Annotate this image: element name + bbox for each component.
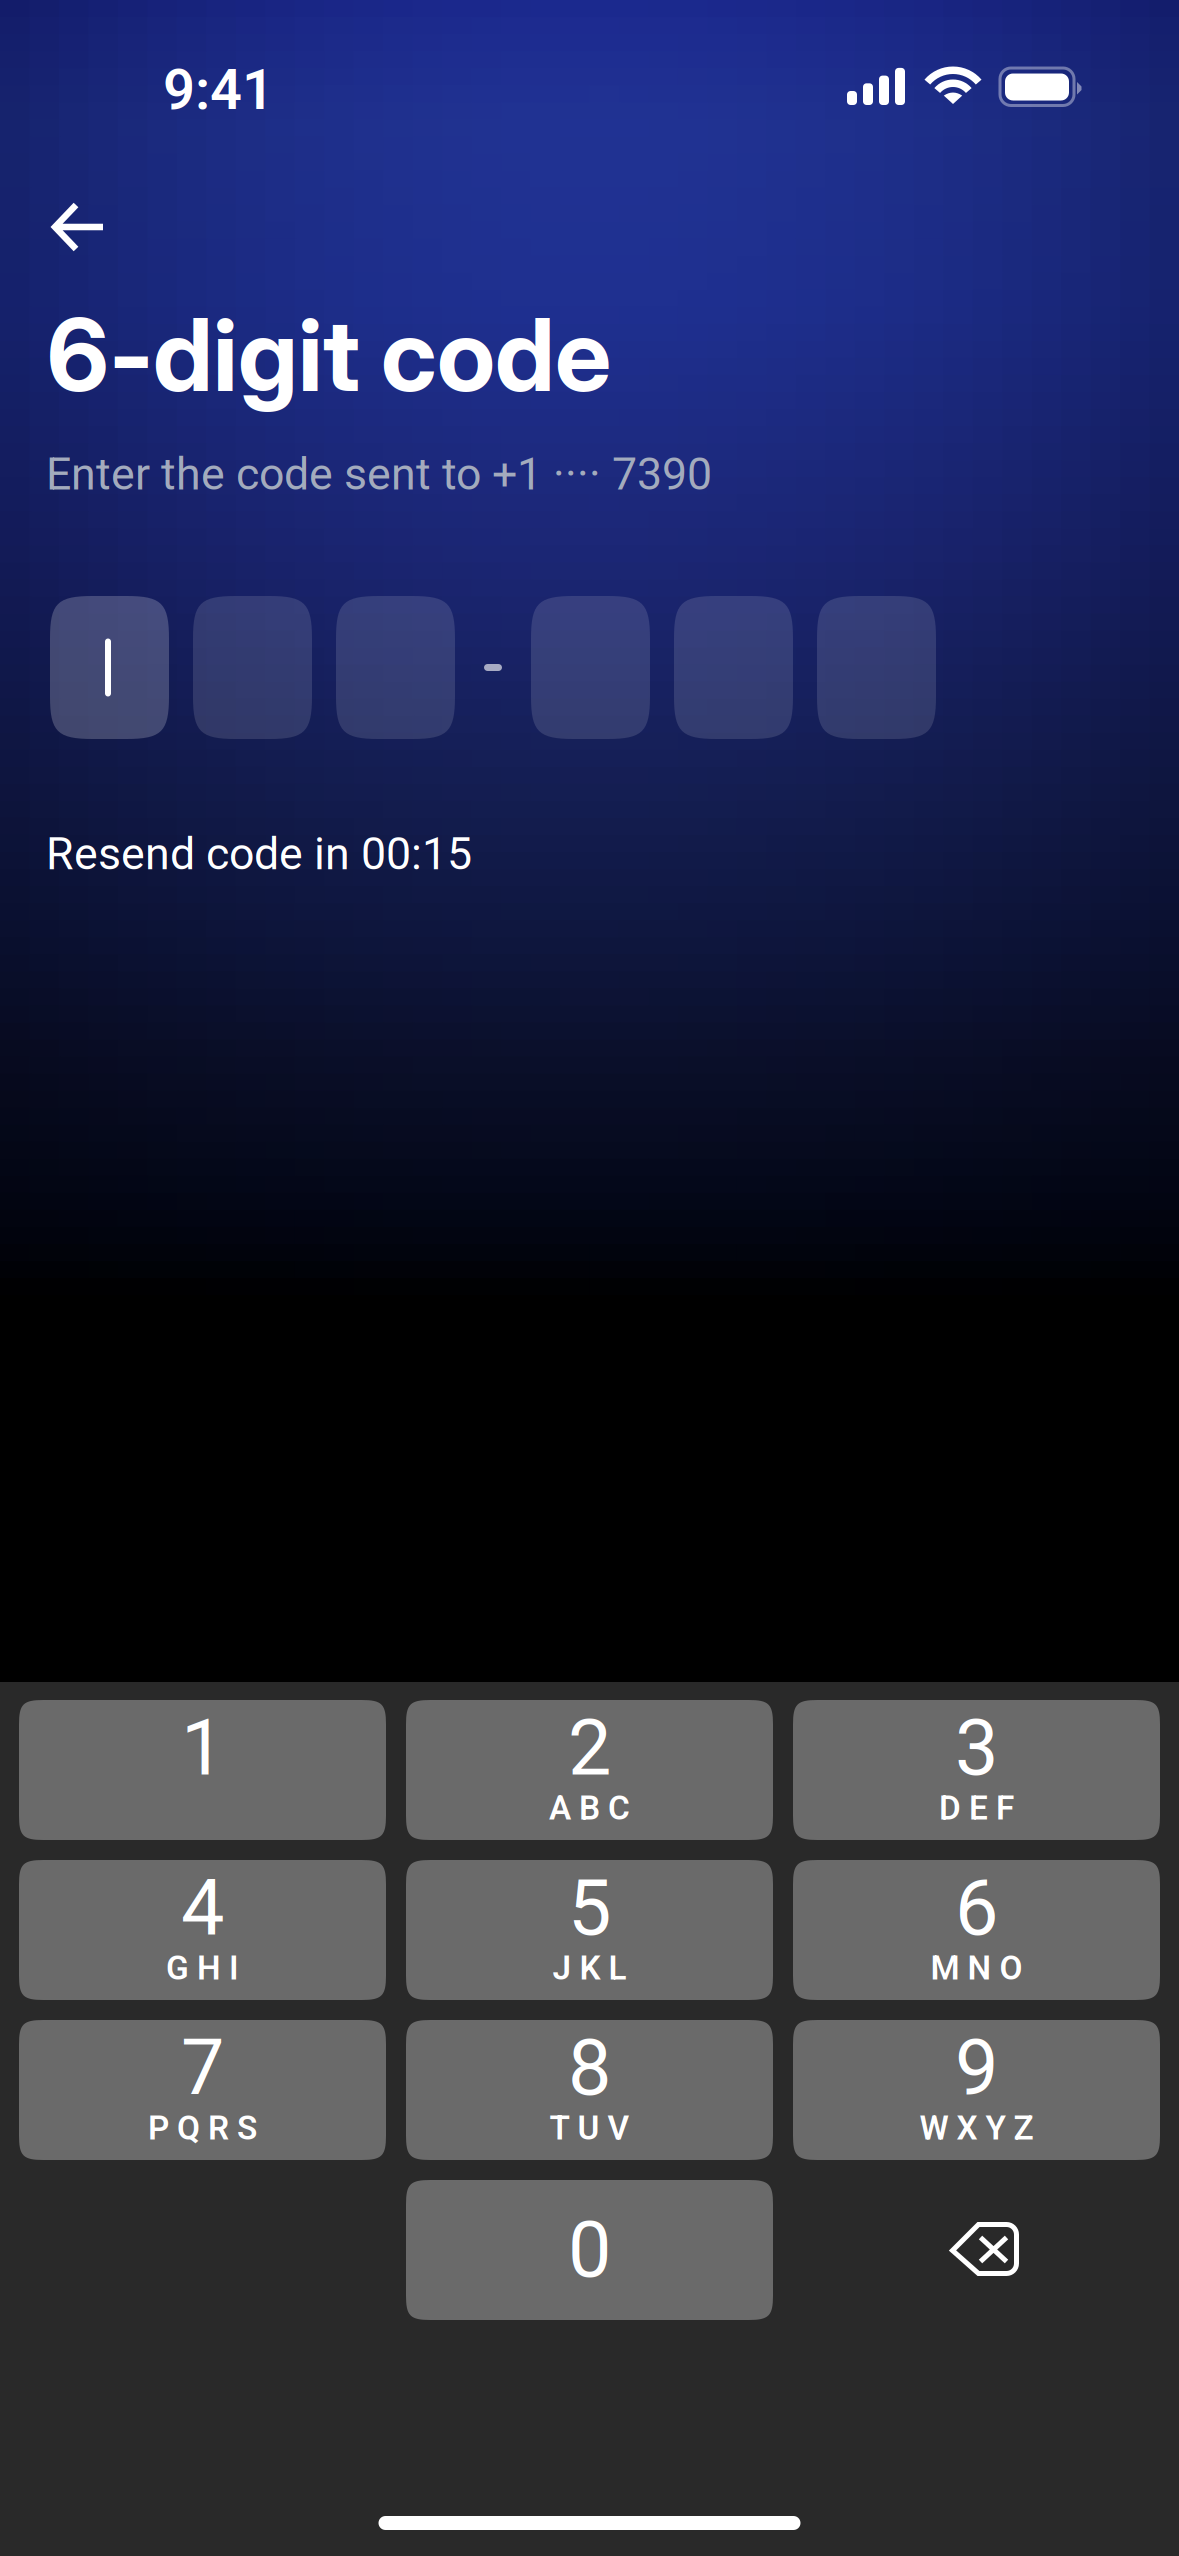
staticText: 6-digit code bbox=[47, 294, 611, 415]
button[interactable]: 6 bbox=[793, 1860, 1160, 2000]
staticText: Resend code in 00:15 bbox=[46, 828, 472, 880]
staticText: T U V bbox=[549, 2108, 629, 2148]
button[interactable]: Code digit bbox=[531, 596, 650, 739]
staticText: 0 bbox=[568, 2205, 611, 2295]
staticText: 2 bbox=[568, 1703, 611, 1793]
staticText: 5 bbox=[568, 1863, 611, 1953]
button[interactable]: Code digit bbox=[193, 596, 312, 739]
staticText: 4 bbox=[181, 1863, 224, 1953]
staticText: Enter the code sent to +1 ···· 7390 bbox=[46, 448, 712, 500]
button[interactable]: 1 bbox=[19, 1700, 386, 1840]
staticText: 3 bbox=[955, 1703, 998, 1793]
button[interactable]: 2 bbox=[406, 1700, 773, 1840]
button[interactable]: 4 bbox=[19, 1860, 386, 2000]
button[interactable]: Code digit bbox=[336, 596, 455, 739]
staticText: 1 bbox=[181, 1703, 224, 1793]
button[interactable]: 7 bbox=[19, 2020, 386, 2160]
button[interactable]: 8 bbox=[406, 2020, 773, 2160]
button[interactable]: Back bbox=[31, 181, 127, 273]
staticText: A B C bbox=[549, 1788, 630, 1828]
button[interactable]: Code digit 1 bbox=[50, 596, 169, 739]
staticText: 9:41 bbox=[163, 57, 274, 123]
button[interactable]: 9 bbox=[793, 2020, 1160, 2160]
button[interactable]: Delete bbox=[793, 2180, 1160, 2320]
staticText: M N O bbox=[930, 1948, 1022, 1988]
staticText: 9 bbox=[955, 2023, 998, 2113]
staticText: W X Y Z bbox=[919, 2108, 1033, 2148]
staticText: G H I bbox=[166, 1948, 239, 1988]
staticText: P Q R S bbox=[148, 2108, 257, 2148]
staticText: J K L bbox=[552, 1948, 626, 1988]
button[interactable]: 5 bbox=[406, 1860, 773, 2000]
button[interactable]: Code digit bbox=[674, 596, 793, 739]
staticText: D E F bbox=[939, 1788, 1014, 1828]
button[interactable]: Code digit bbox=[817, 596, 936, 739]
staticText: 6 bbox=[955, 1863, 998, 1953]
button[interactable]: 3 bbox=[793, 1700, 1160, 1840]
staticText: 7 bbox=[181, 2023, 224, 2113]
button[interactable]: Resend code in 00:15 bbox=[46, 826, 646, 882]
staticText: 8 bbox=[568, 2023, 611, 2113]
button[interactable]: 0 bbox=[406, 2180, 773, 2320]
